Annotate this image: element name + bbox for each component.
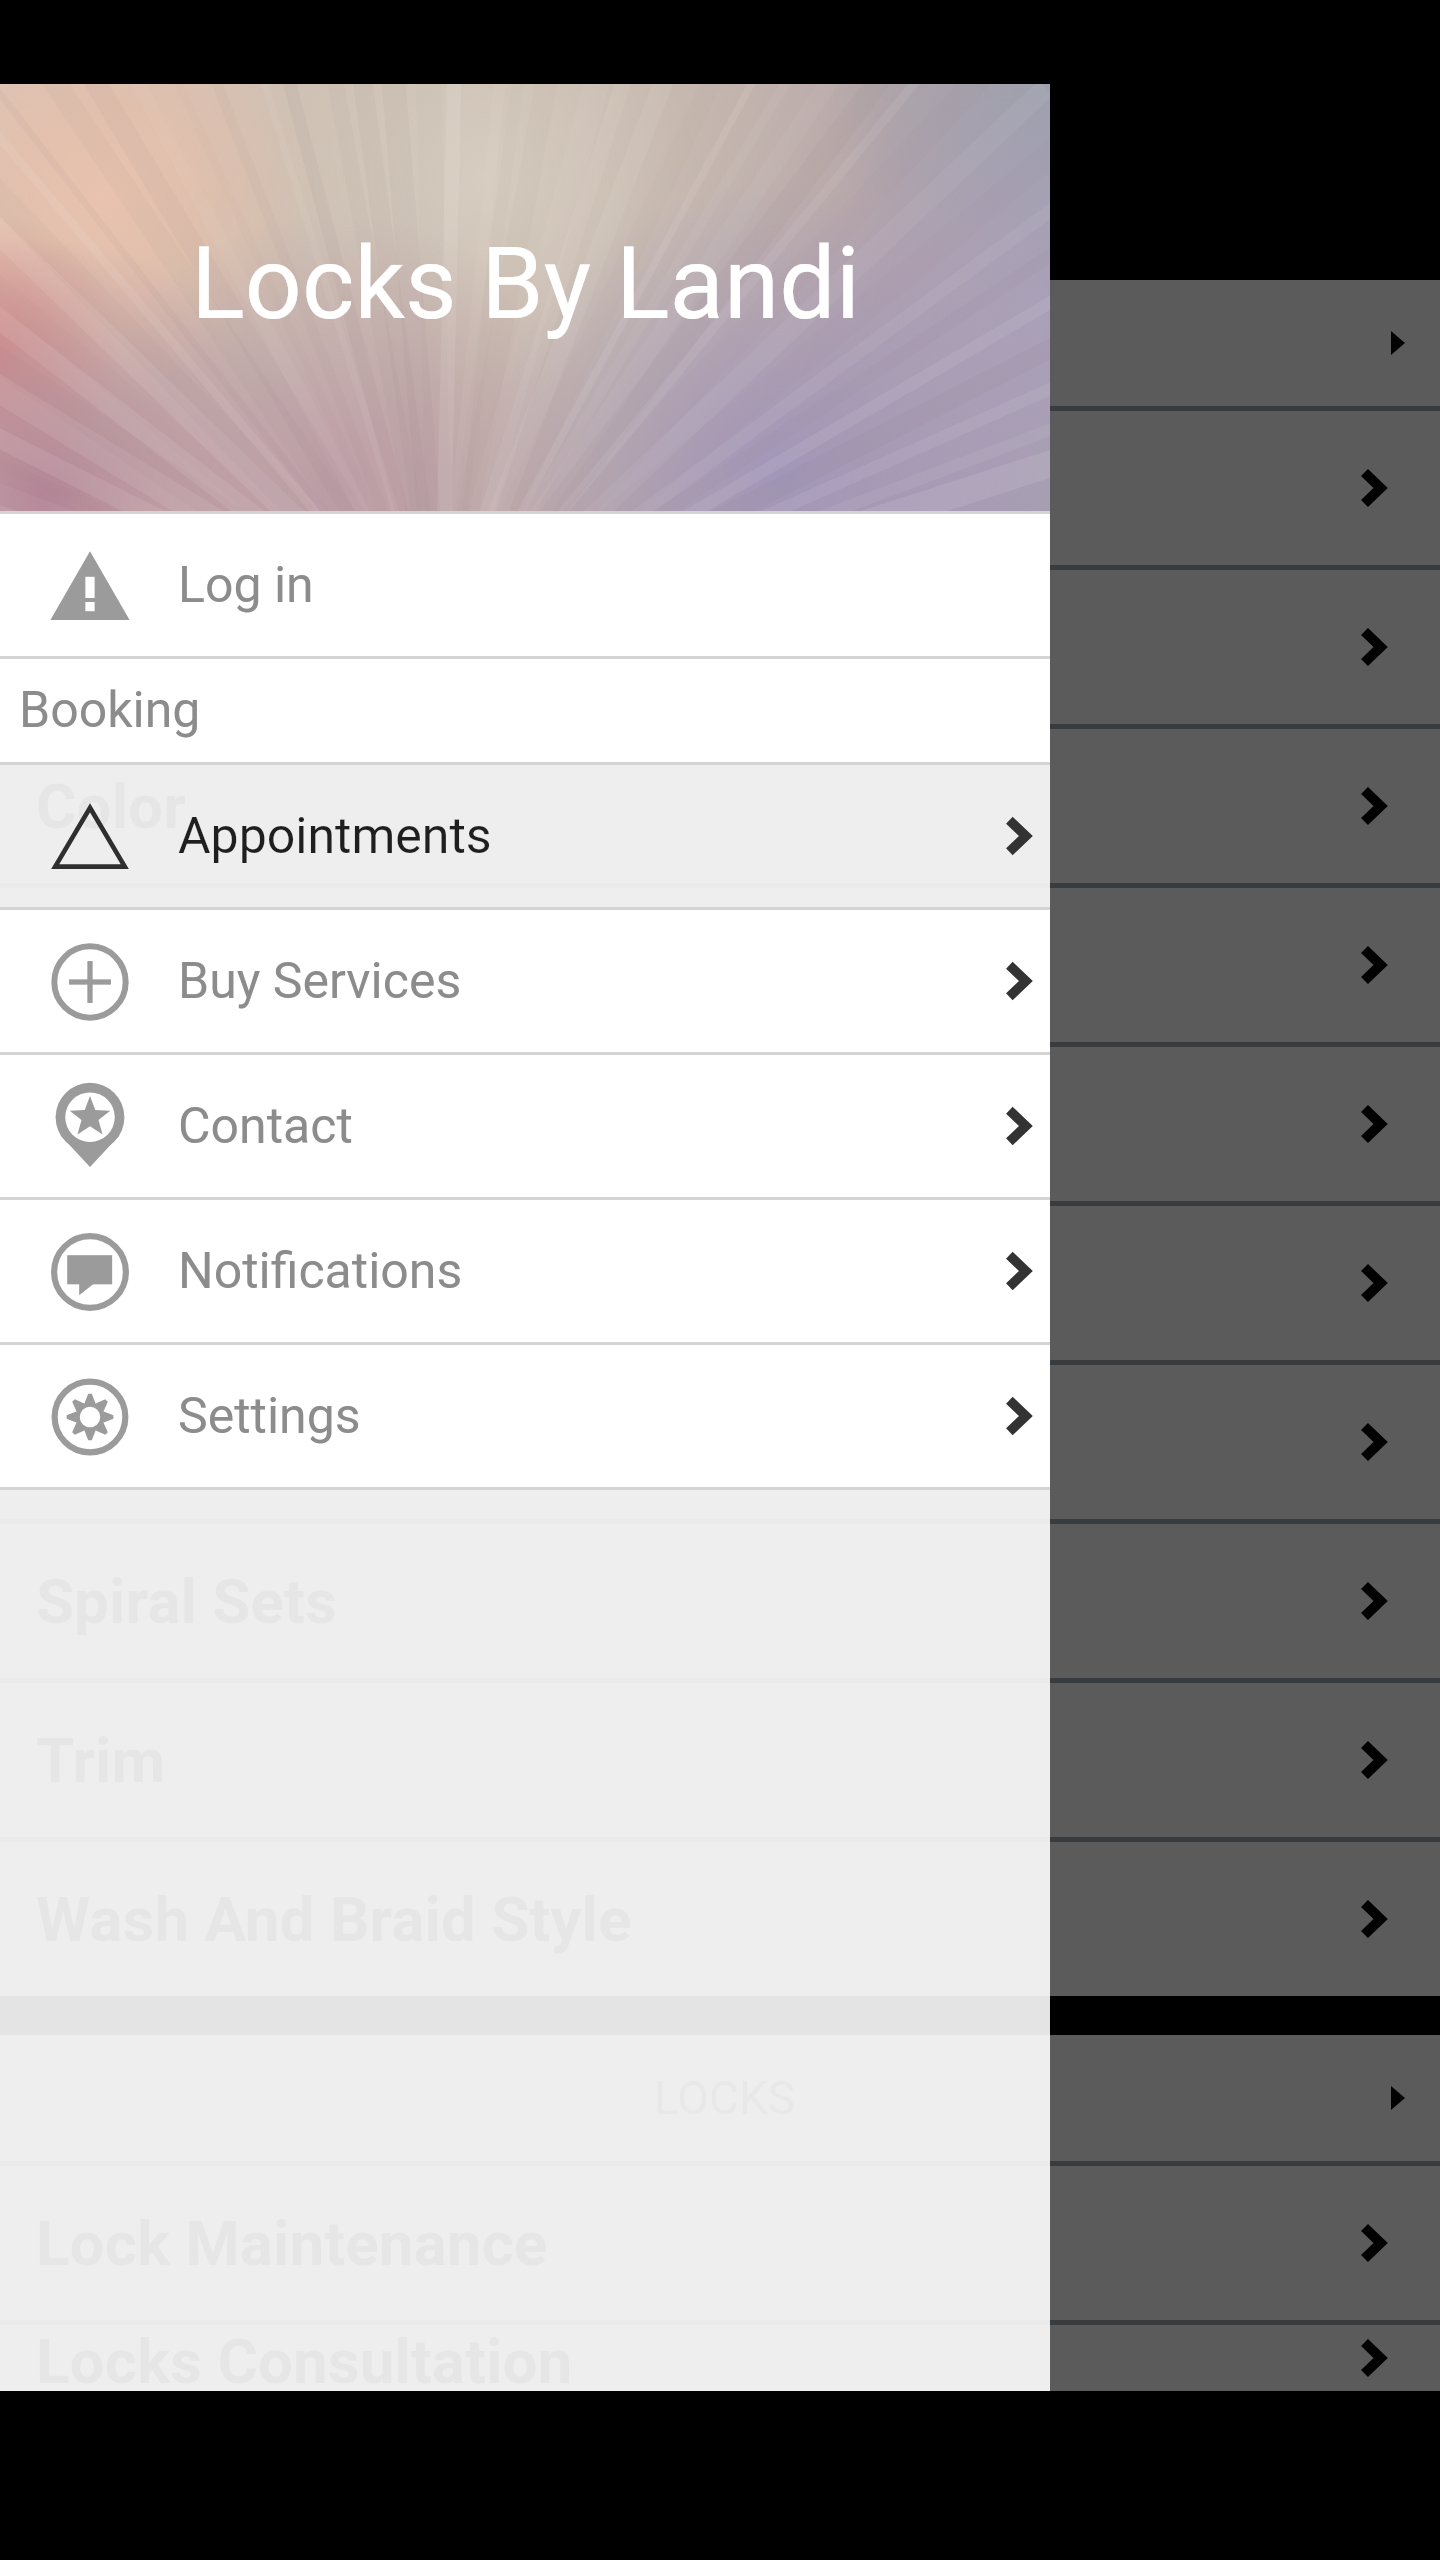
button[interactable]: Settings [0,1345,1050,1487]
button[interactable]: Contact [0,1055,1050,1197]
button[interactable]: Silk Press [0,1365,1440,1519]
button[interactable]: Appointments [0,765,1050,907]
button[interactable]: Buy Services [0,910,1050,1052]
button[interactable]: Blow Out [0,411,1440,565]
button[interactable]: Natural Style [0,1047,1440,1201]
button[interactable]: Locks Consultation [0,2325,1440,2391]
staticText: Blow Out [36,452,287,525]
button[interactable]: Color [0,729,1440,883]
button[interactable]: Deep Condition [0,888,1440,1042]
staticText: Relaxer [36,1247,246,1320]
staticText: Lock Maintenance [36,2207,548,2280]
button[interactable]: Braid Style [0,570,1440,724]
staticText: Log in [178,556,314,615]
staticText: Wash And Braid Style [36,1883,632,1956]
button[interactable]: Relaxer [0,1206,1440,1360]
staticText: Settings [178,1387,361,1446]
staticText: Locks By Landi [191,225,860,342]
button[interactable]: Spiral Sets [0,1524,1440,1678]
button[interactable]: Wash And Braid Style [0,1842,1440,1996]
staticText: Deep Condition [36,929,463,1002]
staticText: Spiral Sets [36,1565,337,1638]
staticText: Natural Style [36,1088,396,1161]
button[interactable]: Log in [0,514,1050,656]
button[interactable]: Notifications [0,1200,1050,1342]
staticText: Locks Consultation [36,2325,573,2391]
staticText: Contact [178,1097,353,1156]
button[interactable]: Lock Maintenance [0,2166,1440,2320]
staticText: Booking [19,681,201,740]
staticText: Trim [36,1724,166,1797]
staticText: Notifications [178,1242,463,1301]
staticText: Appointments [178,807,492,866]
button[interactable]: Expand services section [0,280,1440,406]
button[interactable]: Trim [0,1683,1440,1837]
staticText: Color [36,770,186,843]
staticText: Silk Press [36,1406,315,1479]
button[interactable]: Close navigation drawer [0,0,1440,2560]
button[interactable]: LOCKS [0,2035,1440,2161]
staticText: Buy Services [178,952,462,1011]
staticText: Braid Style [36,611,338,684]
